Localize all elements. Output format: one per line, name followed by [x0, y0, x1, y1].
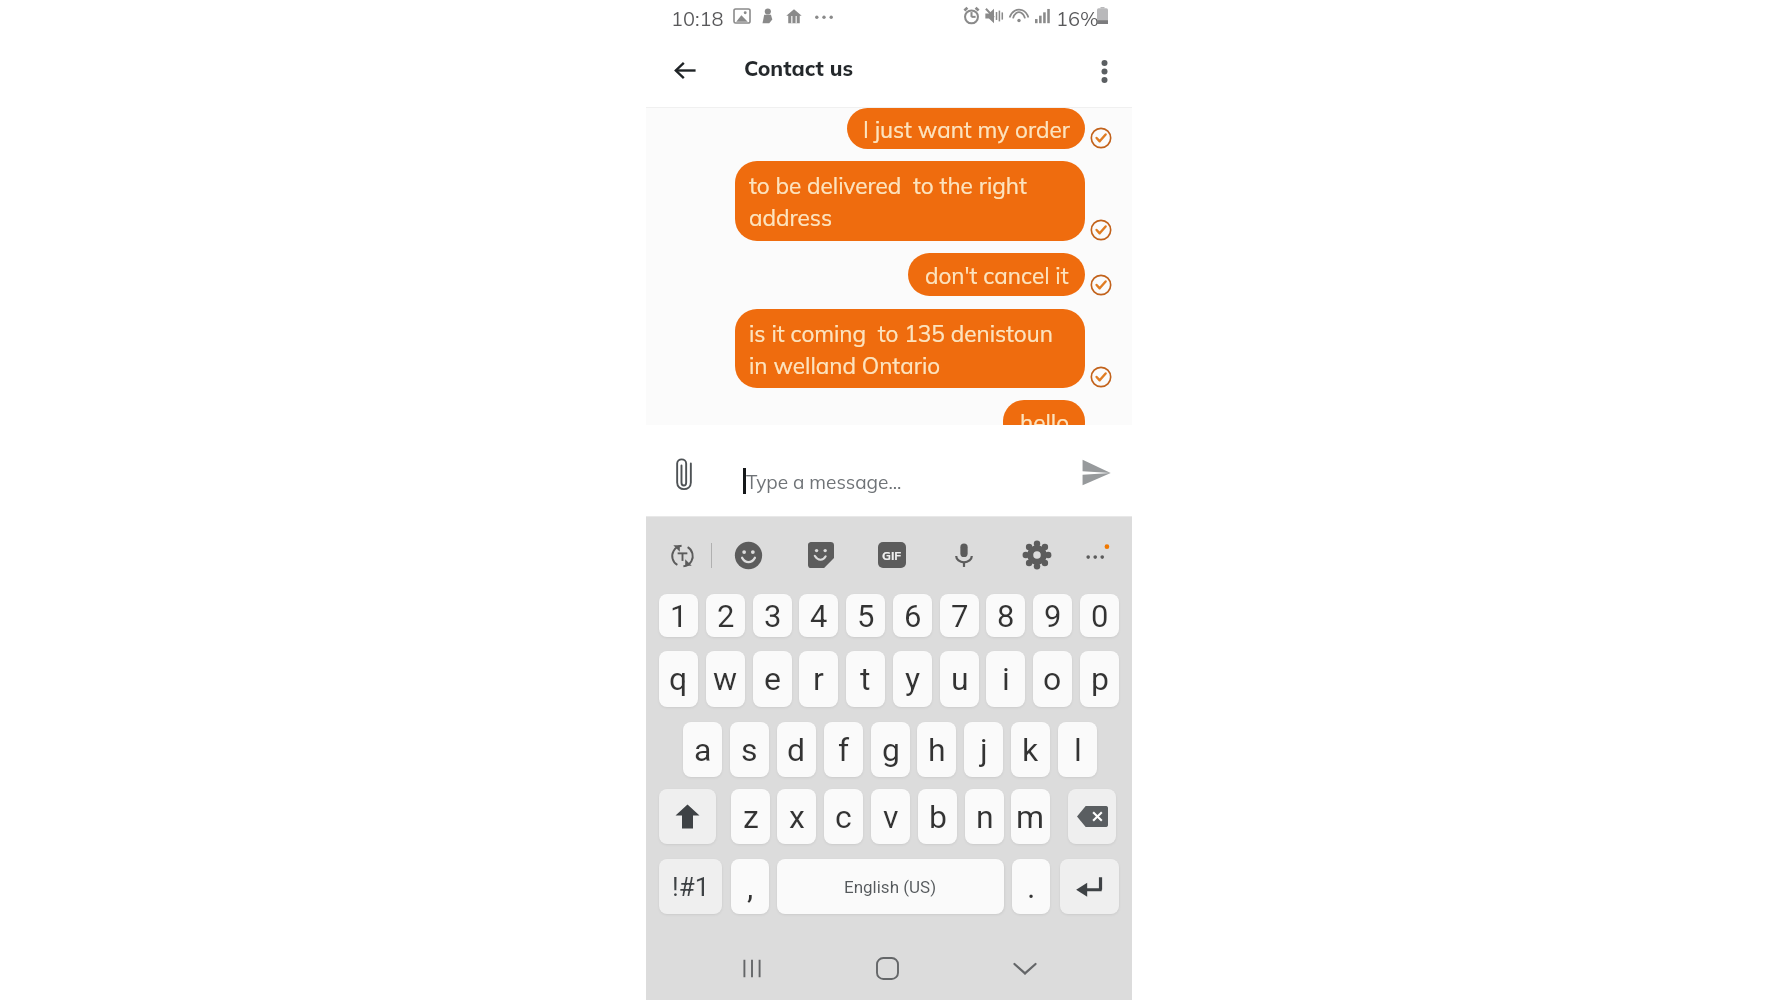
staticText: g	[882, 731, 900, 769]
button[interactable]: g	[871, 722, 910, 777]
staticText: w	[713, 660, 738, 698]
staticText: 5	[857, 598, 875, 634]
staticText: 7	[951, 598, 969, 634]
button[interactable]: Home	[863, 944, 911, 992]
button[interactable]: h	[917, 722, 956, 777]
button[interactable]: x	[777, 789, 816, 844]
button[interactable]: 9	[1033, 594, 1072, 637]
button[interactable]: 8	[986, 594, 1025, 637]
button[interactable]: z	[731, 789, 770, 844]
button[interactable]: .	[1012, 859, 1050, 914]
button[interactable]: s	[730, 722, 769, 777]
staticText: I just want my order	[863, 115, 1070, 143]
staticText: b	[929, 798, 947, 836]
button[interactable]: f	[824, 722, 863, 777]
staticText: n	[976, 798, 994, 836]
button[interactable]: Attach file	[666, 457, 702, 493]
button[interactable]: m	[1011, 789, 1050, 844]
button[interactable]: More options	[1085, 52, 1123, 90]
staticText: to be delivered to the right address	[749, 171, 1027, 231]
staticText: t	[860, 660, 871, 698]
staticText: r	[813, 660, 824, 698]
staticText: 0	[1091, 598, 1109, 634]
button[interactable]: I just want my order	[847, 108, 1085, 149]
staticText: u	[951, 660, 969, 698]
button[interactable]: i	[986, 651, 1025, 707]
staticText: 9	[1044, 598, 1062, 634]
button[interactable]: u	[940, 651, 979, 707]
button[interactable]: GIF	[878, 542, 906, 568]
staticText: 2	[717, 598, 735, 634]
staticText: ,	[747, 868, 754, 906]
button[interactable]: is it coming to 135 denistoun in welland…	[735, 309, 1085, 388]
button[interactable]: Translate	[663, 536, 701, 574]
staticText: y	[905, 660, 921, 698]
staticText: 6	[904, 598, 922, 634]
button[interactable]: to be delivered to the right address	[735, 161, 1085, 241]
staticText: a	[694, 731, 712, 769]
button[interactable]: don't cancel it	[908, 253, 1085, 296]
button[interactable]: 0	[1080, 594, 1119, 637]
button[interactable]: Enter	[1060, 859, 1119, 914]
button[interactable]: Back	[665, 50, 706, 91]
staticText: h	[928, 731, 946, 769]
button[interactable]: English (US)	[777, 859, 1004, 914]
staticText: GIF	[882, 548, 902, 563]
staticText: 1	[670, 598, 688, 634]
staticText: 4	[810, 598, 828, 634]
button[interactable]: n	[965, 789, 1004, 844]
button[interactable]: j	[964, 722, 1003, 777]
button[interactable]: 1	[659, 594, 698, 637]
button[interactable]: 5	[846, 594, 885, 637]
button[interactable]: hello	[1003, 400, 1085, 425]
staticText: 8	[997, 598, 1015, 634]
staticText: l	[1074, 731, 1082, 769]
staticText: 16%	[1056, 6, 1099, 31]
button[interactable]: Type a message...	[743, 457, 1053, 505]
button[interactable]: 4	[799, 594, 838, 637]
staticText: v	[883, 798, 899, 836]
button[interactable]: Backspace	[1068, 789, 1116, 844]
button[interactable]: !#1	[659, 859, 722, 914]
staticText: .	[1027, 868, 1036, 906]
button[interactable]: k	[1011, 722, 1050, 777]
button[interactable]: ,	[731, 859, 769, 914]
button[interactable]: More	[1077, 536, 1115, 574]
button[interactable]: l	[1058, 722, 1097, 777]
button[interactable]: w	[706, 651, 745, 707]
staticText: !#1	[672, 872, 710, 902]
button[interactable]: 2	[706, 594, 745, 637]
staticText: c	[835, 798, 852, 836]
staticText: i	[1002, 660, 1010, 698]
staticText: p	[1091, 660, 1109, 698]
button[interactable]: 6	[893, 594, 932, 637]
staticText: j	[980, 731, 988, 769]
button[interactable]: q	[659, 651, 698, 707]
button[interactable]: e	[753, 651, 792, 707]
button[interactable]: v	[871, 789, 910, 844]
button[interactable]: d	[777, 722, 816, 777]
staticText: Contact us	[744, 55, 854, 81]
button[interactable]: 3	[753, 594, 792, 637]
button[interactable]: p	[1080, 651, 1119, 707]
button[interactable]: a	[683, 722, 722, 777]
button[interactable]: t	[846, 651, 885, 707]
button[interactable]: Hide keyboard	[1001, 944, 1049, 992]
button[interactable]: Stickers	[802, 536, 840, 574]
button[interactable]: y	[893, 651, 932, 707]
button[interactable]: Recents	[728, 944, 776, 992]
button[interactable]: b	[918, 789, 957, 844]
button[interactable]: r	[799, 651, 838, 707]
button[interactable]: Settings	[1018, 536, 1056, 574]
button[interactable]: Emoji	[729, 536, 767, 574]
button[interactable]: o	[1033, 651, 1072, 707]
button[interactable]: Send	[1076, 452, 1116, 492]
staticText: Type a message...	[746, 470, 902, 494]
staticText: don't cancel it	[925, 261, 1069, 289]
button[interactable]: 7	[940, 594, 979, 637]
staticText: x	[789, 798, 805, 836]
button[interactable]: Shift	[659, 789, 716, 844]
staticText: m	[1016, 798, 1045, 836]
button[interactable]: Voice input	[945, 536, 983, 574]
button[interactable]: c	[824, 789, 863, 844]
